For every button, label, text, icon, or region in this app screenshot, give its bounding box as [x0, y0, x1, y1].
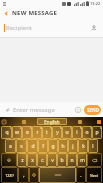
staticText: p — [95, 129, 99, 136]
staticText: , — [23, 172, 25, 179]
staticText: 7 — [70, 126, 72, 130]
button[interactable]: SEND — [84, 105, 101, 115]
button[interactable]: a — [5, 139, 16, 153]
staticText: . — [80, 172, 82, 179]
staticText: n — [70, 157, 74, 164]
staticText: t — [46, 129, 48, 136]
button[interactable]: Shift — [1, 153, 17, 167]
staticText: English — [44, 119, 60, 125]
staticText: x — [31, 157, 34, 164]
button[interactable]: p — [92, 126, 102, 139]
staticText: 1 — [10, 126, 12, 130]
button[interactable]: v — [47, 153, 57, 167]
staticText: Recipient — [6, 24, 33, 32]
staticText: 3 — [30, 126, 32, 130]
button[interactable]: j — [68, 139, 78, 153]
staticText: 8 — [80, 126, 82, 130]
button[interactable]: k — [78, 139, 88, 153]
staticText: NEW MESSAGE — [12, 9, 58, 17]
button[interactable]: Back — [0, 7, 12, 19]
staticText: 13:22 — [90, 1, 101, 6]
staticText: 123!? — [5, 173, 14, 178]
button[interactable]: l — [88, 139, 98, 153]
staticText: a — [9, 143, 12, 150]
staticText: Next — [90, 173, 98, 178]
button[interactable]: Keyboard settings — [29, 167, 39, 183]
button[interactable]: Sticker — [1, 119, 7, 125]
staticText: v — [51, 157, 54, 164]
button[interactable]: More options — [96, 119, 102, 125]
staticText: m — [80, 157, 85, 164]
button[interactable]: s — [16, 139, 27, 153]
staticText: s — [20, 143, 23, 150]
staticText: b — [60, 157, 64, 164]
button[interactable]: r — [32, 126, 42, 139]
staticText: j — [72, 143, 74, 150]
button[interactable]: 123!? — [1, 167, 18, 183]
button[interactable]: w — [12, 126, 22, 139]
staticText: 6 — [60, 126, 62, 130]
staticText: h — [61, 143, 65, 150]
staticText: 5 — [50, 126, 52, 130]
button[interactable]: e — [22, 126, 32, 139]
button[interactable]: t — [42, 126, 52, 139]
staticText: u — [65, 129, 69, 136]
button[interactable]: Add contact — [87, 21, 101, 35]
button[interactable]: z — [17, 153, 27, 167]
button[interactable]: f — [38, 139, 48, 153]
button[interactable]: . — [76, 167, 86, 183]
button[interactable]: n — [67, 153, 77, 167]
staticText: SEND — [87, 107, 99, 113]
staticText: d — [31, 143, 35, 150]
staticText: g — [51, 143, 55, 150]
button[interactable]: Next — [86, 167, 102, 183]
button[interactable]: Attach — [3, 105, 12, 114]
staticText: r — [36, 129, 39, 136]
button[interactable]: i — [72, 126, 82, 139]
staticText: Enter message — [13, 106, 55, 114]
staticText: e — [26, 129, 29, 136]
staticText: w — [15, 129, 19, 136]
button[interactable]: English — [37, 118, 67, 125]
staticText: i — [76, 129, 78, 136]
button[interactable]: c — [37, 153, 47, 167]
staticText: q — [5, 129, 9, 136]
button[interactable]: q — [1, 126, 12, 139]
staticText: l — [92, 143, 94, 150]
button[interactable]: h — [58, 139, 68, 153]
staticText: 9 — [90, 126, 92, 130]
staticText: z — [21, 157, 24, 164]
button[interactable]: Emoji — [73, 105, 83, 115]
button[interactable]: x — [27, 153, 37, 167]
staticText: k — [82, 143, 85, 150]
staticText: 0 — [100, 126, 102, 130]
staticText: f — [42, 143, 44, 150]
staticText: c — [41, 157, 44, 164]
button[interactable]: m — [77, 153, 87, 167]
button[interactable]: d — [27, 139, 38, 153]
staticText: 4 — [40, 126, 42, 130]
button[interactable]: o — [82, 126, 92, 139]
button[interactable]: Space — [39, 167, 76, 183]
button[interactable]: y — [52, 126, 62, 139]
staticText: y — [56, 129, 59, 136]
button[interactable]: Theme — [77, 119, 83, 125]
button[interactable]: b — [57, 153, 67, 167]
button[interactable]: u — [62, 126, 72, 139]
button[interactable]: , — [18, 167, 29, 183]
button[interactable]: Recipient — [0, 19, 103, 37]
staticText: o — [85, 129, 89, 136]
button[interactable]: Delete — [87, 153, 102, 167]
button[interactable]: Emoji — [21, 119, 27, 125]
staticText: 2 — [20, 126, 22, 130]
button[interactable]: g — [48, 139, 58, 153]
